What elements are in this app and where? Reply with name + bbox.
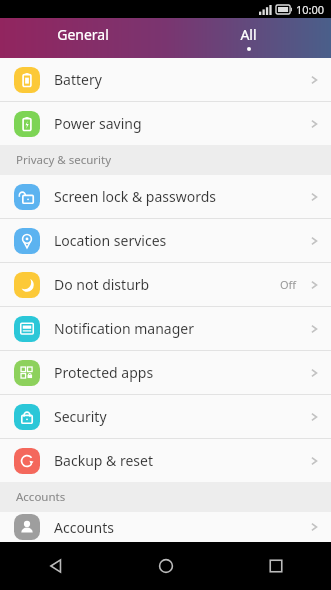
staticText: Battery bbox=[54, 70, 307, 89]
button[interactable]: Accounts bbox=[0, 512, 331, 542]
staticText: Notification manager bbox=[54, 319, 307, 338]
staticText: Protected apps bbox=[54, 363, 307, 382]
staticText: Off bbox=[280, 277, 297, 292]
staticText: Accounts bbox=[16, 489, 66, 505]
button[interactable]: Power saving bbox=[0, 102, 331, 145]
button[interactable]: Screen lock & passwords bbox=[0, 175, 331, 218]
staticText: Do not disturb bbox=[54, 275, 280, 294]
button[interactable]: Battery bbox=[0, 58, 331, 101]
staticText: Backup & reset bbox=[54, 451, 307, 470]
button[interactable]: Location services bbox=[0, 219, 331, 262]
staticText: Accounts bbox=[54, 518, 307, 537]
button[interactable]: Protected apps bbox=[0, 351, 331, 394]
staticText: Privacy & security bbox=[16, 152, 112, 168]
button[interactable]: Do not disturb bbox=[0, 263, 331, 306]
staticText: Screen lock & passwords bbox=[54, 187, 307, 206]
staticText: Location services bbox=[54, 231, 307, 250]
staticText: Security bbox=[54, 407, 307, 426]
staticText: All bbox=[240, 25, 257, 44]
button[interactable]: Back bbox=[0, 542, 111, 590]
button[interactable]: General bbox=[0, 18, 165, 58]
button[interactable]: Security bbox=[0, 395, 331, 438]
staticText: General bbox=[57, 25, 109, 44]
staticText: Power saving bbox=[54, 114, 307, 133]
button[interactable]: Recent apps bbox=[221, 542, 331, 590]
button[interactable]: Backup & reset bbox=[0, 439, 331, 482]
staticText: 10:00 bbox=[296, 2, 325, 17]
button[interactable]: Notification manager bbox=[0, 307, 331, 350]
button[interactable]: All bbox=[165, 18, 331, 58]
button[interactable]: Home bbox=[111, 542, 221, 590]
